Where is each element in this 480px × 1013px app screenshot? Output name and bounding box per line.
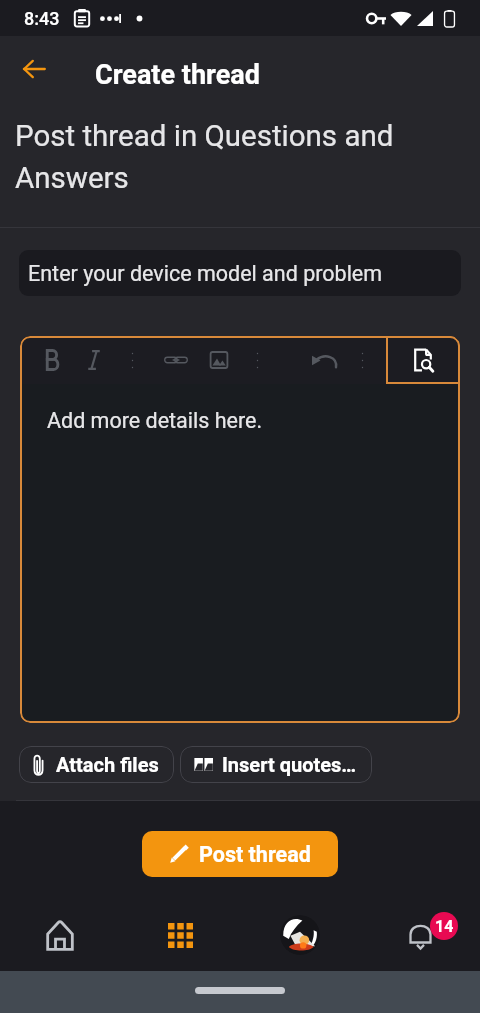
button[interactable]: More insert options <box>236 336 278 384</box>
staticText: Insert quotes… <box>222 753 357 776</box>
staticText: Post thread in Questions and Answers <box>15 119 458 195</box>
staticText: Attach files <box>56 753 159 776</box>
button[interactable]: Post thread <box>142 831 338 877</box>
button[interactable]: Attach files <box>19 746 174 783</box>
staticText: Create thread <box>95 59 260 91</box>
button[interactable]: Back <box>12 47 56 91</box>
staticText: Enter your device model and problem <box>28 261 383 286</box>
staticText: 8:43 <box>24 8 60 29</box>
button[interactable]: Bold <box>30 336 72 384</box>
button[interactable]: Italic <box>73 336 115 384</box>
button[interactable]: More text styles <box>111 336 153 384</box>
button[interactable]: Insert link <box>155 336 197 384</box>
staticText: Post thread <box>199 842 311 867</box>
button[interactable]: Insert image <box>198 336 240 384</box>
button[interactable]: Undo <box>303 336 345 384</box>
button[interactable]: Forums <box>134 912 226 958</box>
button[interactable]: Notifications, 14 unread <box>394 912 466 958</box>
button[interactable]: Home <box>14 912 106 958</box>
button[interactable]: Insert quotes <box>180 746 372 783</box>
button[interactable]: Enter your device model and problem <box>19 250 461 296</box>
staticText: 14 <box>435 917 454 936</box>
button[interactable]: Profile <box>254 912 346 958</box>
button[interactable]: More options <box>341 336 383 384</box>
staticText: Add more details here. <box>47 408 263 433</box>
button[interactable]: Preview <box>386 336 460 384</box>
